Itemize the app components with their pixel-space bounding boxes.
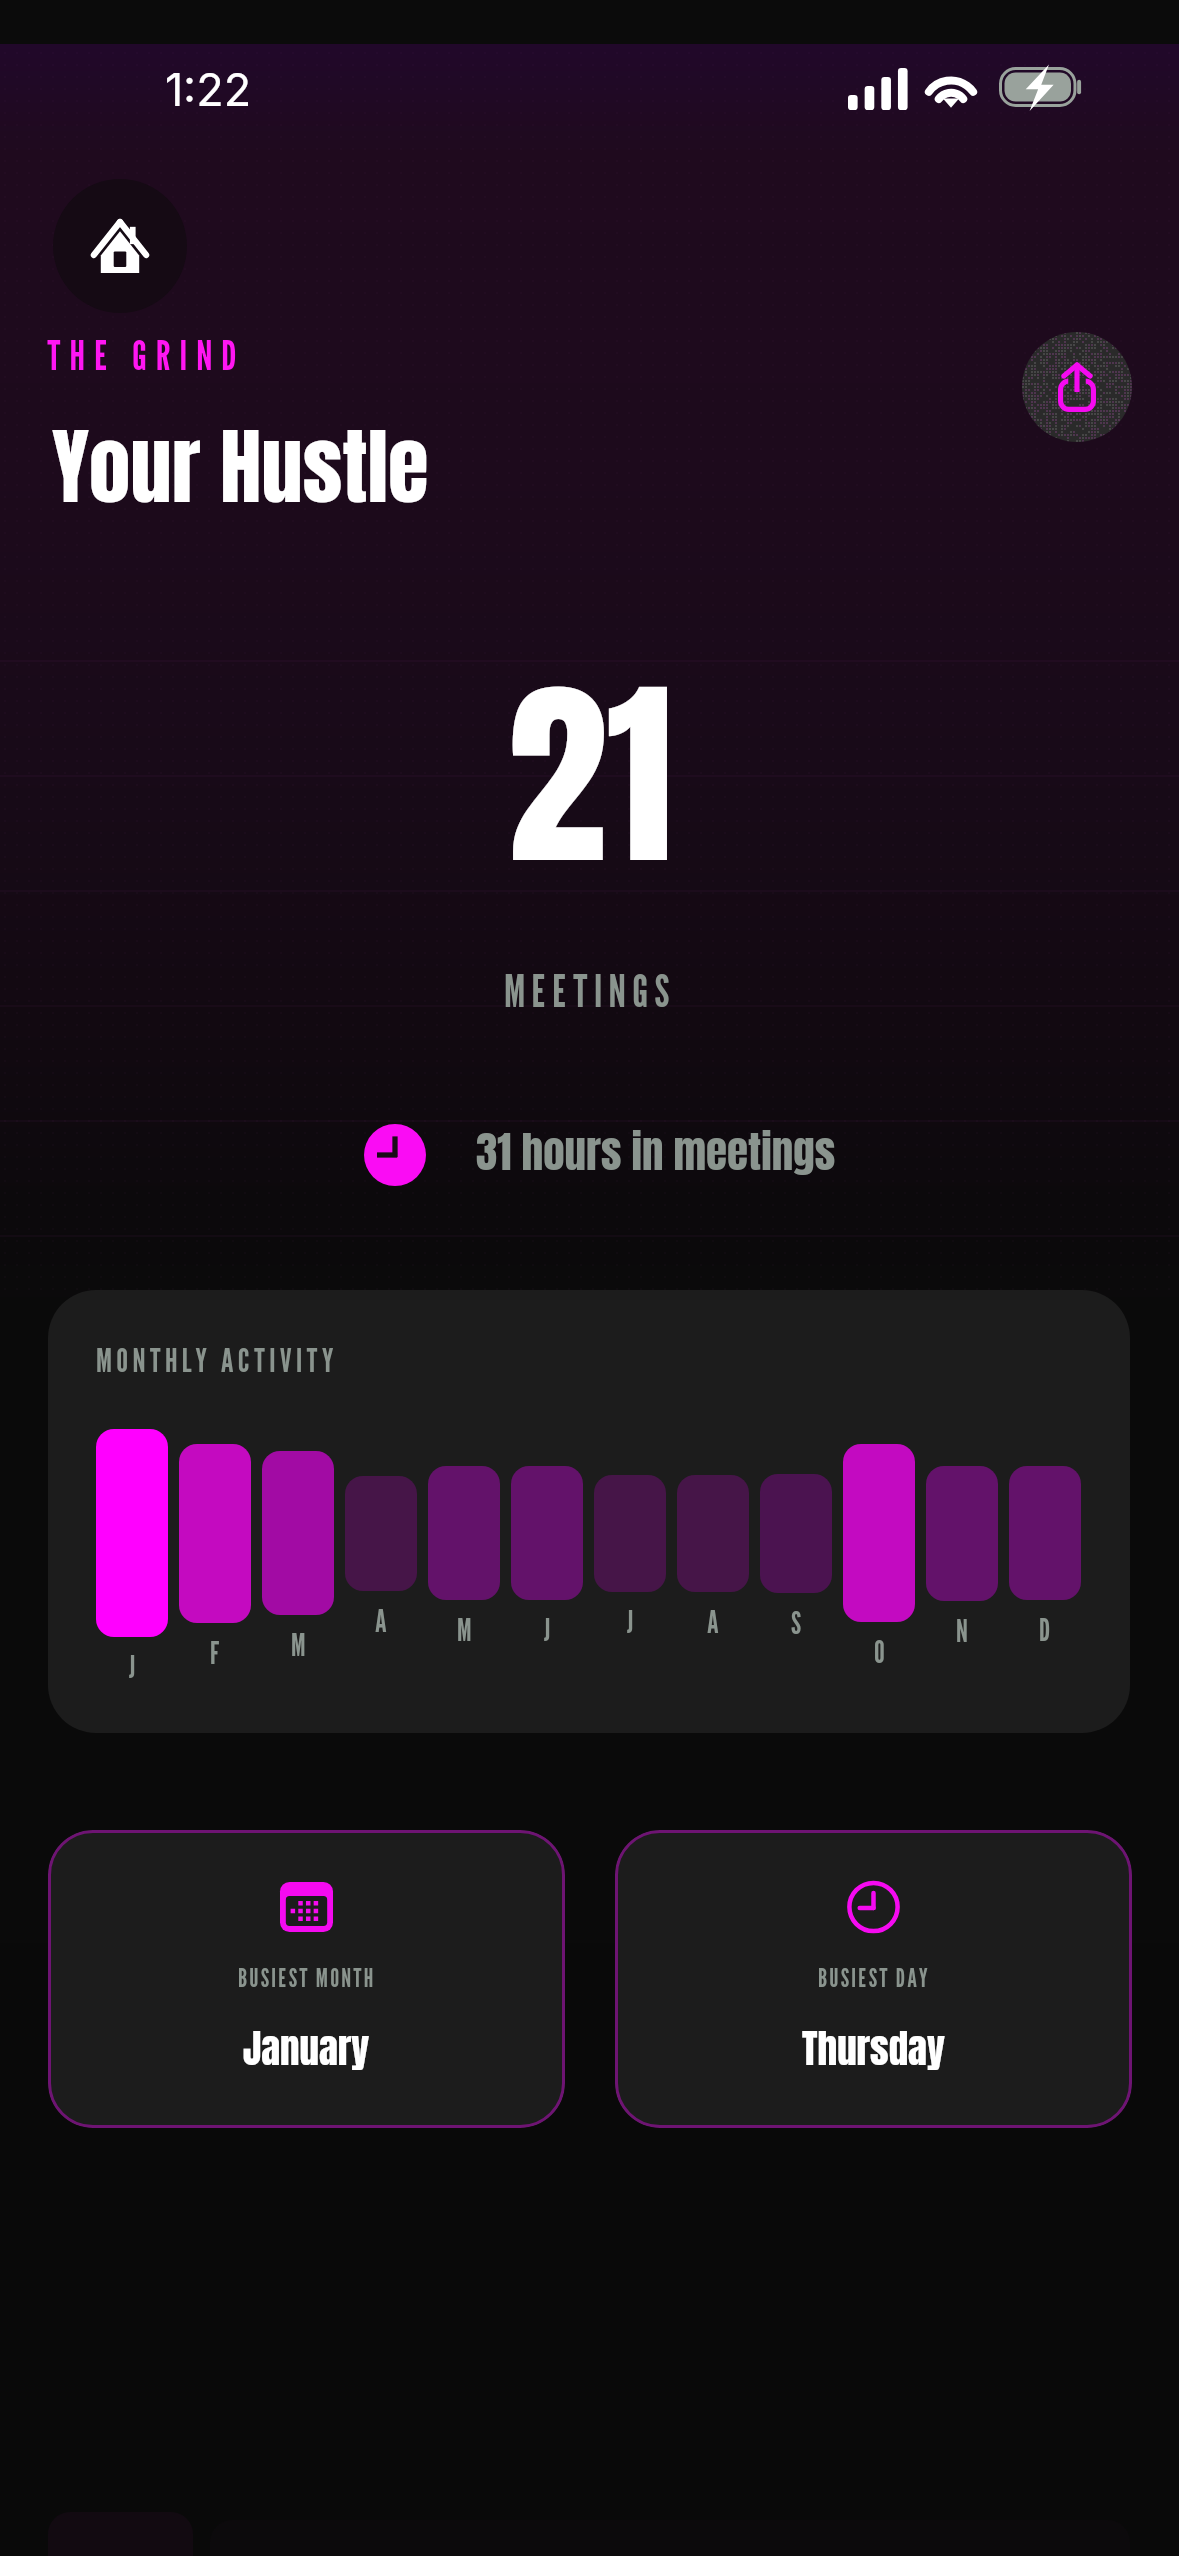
staticText: 31 hours in meetings: [476, 1119, 836, 1184]
button[interactable]: Home: [53, 179, 187, 313]
staticText: Thursday: [802, 2019, 945, 2078]
staticText: THE GRIND: [47, 330, 246, 379]
button[interactable]: MONTHLY ACTIVITY: [48, 1290, 1130, 1733]
staticText: D: [1039, 1612, 1051, 1648]
staticText: 1:22: [165, 62, 252, 116]
button[interactable]: BUSIEST MONTH: [48, 1830, 565, 2128]
staticText: January: [243, 2019, 370, 2078]
staticText: J: [129, 1649, 136, 1685]
staticText: J: [627, 1604, 634, 1640]
staticText: S: [791, 1605, 802, 1641]
staticText: A: [375, 1603, 387, 1639]
button[interactable]: BUSIEST DAY: [615, 1830, 1132, 2128]
staticText: M: [291, 1627, 306, 1663]
staticText: MONTHLY ACTIVITY: [96, 1340, 338, 1380]
button[interactable]: Share: [1022, 332, 1132, 442]
staticText: BUSIEST MONTH: [238, 1963, 376, 1993]
staticText: A: [707, 1604, 719, 1640]
staticText: O: [874, 1634, 885, 1670]
staticText: 21: [507, 624, 673, 927]
staticText: J: [544, 1612, 551, 1648]
staticText: MEETINGS: [504, 964, 676, 1017]
staticText: M: [457, 1612, 472, 1648]
staticText: BUSIEST DAY: [818, 1963, 930, 1993]
staticText: N: [956, 1613, 968, 1649]
staticText: F: [210, 1635, 220, 1671]
staticText: Your Hustle: [52, 404, 429, 529]
